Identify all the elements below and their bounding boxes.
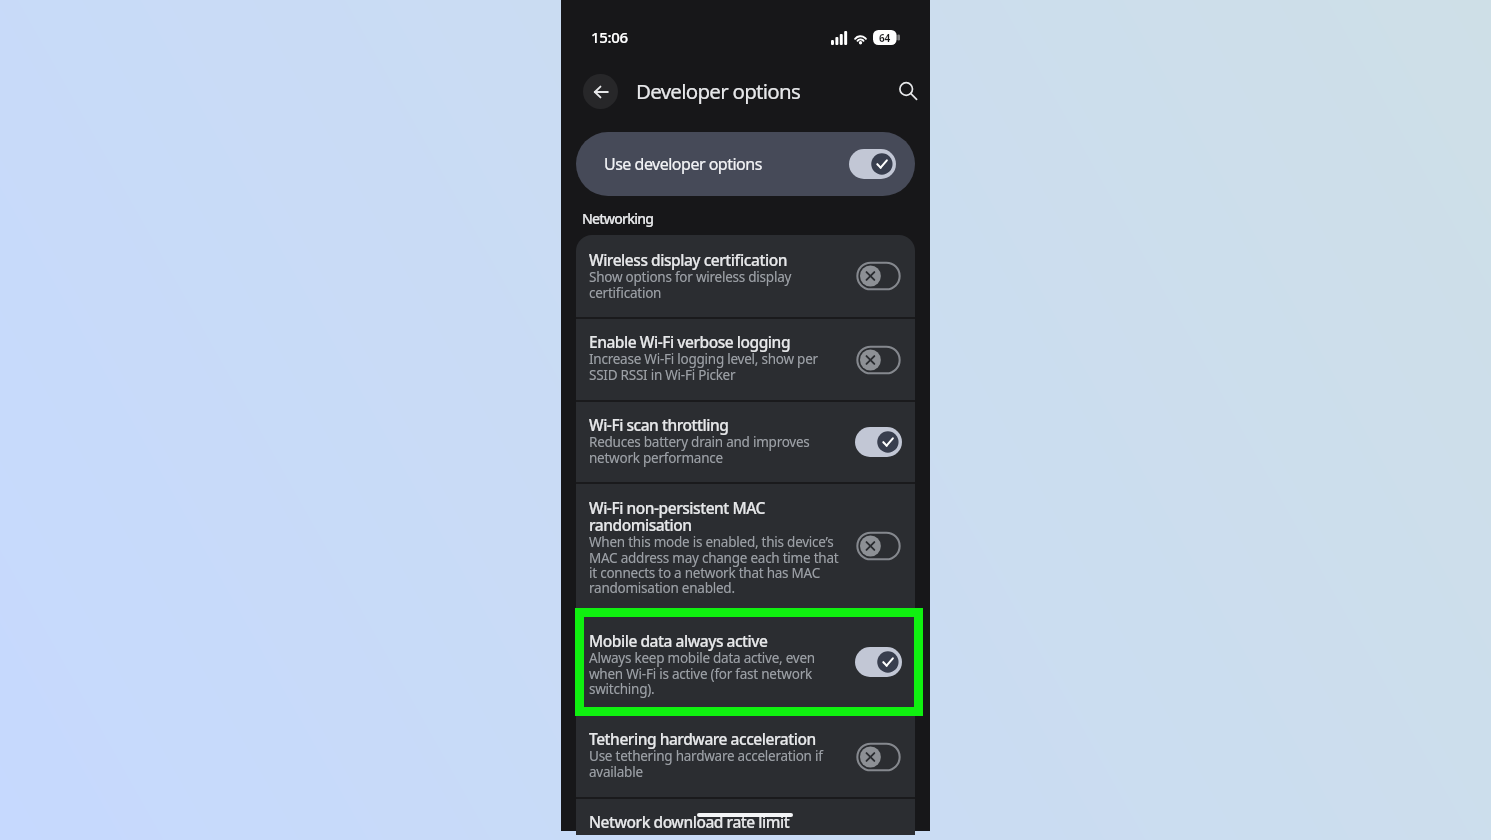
- staticText: Wi-Fi scan throttling: [589, 414, 729, 435]
- button[interactable]: Tethering hardware acceleration: [576, 716, 915, 797]
- button[interactable]: Network download rate limit: [576, 799, 915, 835]
- staticText: Show options for wireless display certif…: [589, 268, 792, 302]
- staticText: 15:06: [591, 27, 628, 47]
- staticText: Wi-Fi non-persistent MAC randomisation: [589, 497, 765, 535]
- button[interactable]: Toggle Mobile data always active: [855, 647, 902, 677]
- button[interactable]: Toggle Wi-Fi scan throttling: [855, 427, 902, 457]
- staticText: Use developer options: [604, 153, 762, 175]
- staticText: Networking: [582, 209, 654, 228]
- button[interactable]: Use developer options: [576, 132, 915, 196]
- button[interactable]: Back: [583, 74, 618, 109]
- staticText: Developer options: [636, 77, 801, 105]
- button[interactable]: Mobile data always active: [576, 608, 915, 716]
- staticText: When this mode is enabled, this device’s…: [589, 533, 839, 597]
- button[interactable]: Wi-Fi non-persistent MAC randomisation: [576, 484, 915, 608]
- button[interactable]: Enable Wi-Fi verbose logging: [576, 319, 915, 400]
- button[interactable]: Toggle Wi-Fi non-persistent MAC randomis…: [855, 531, 902, 561]
- staticText: Network download rate limit: [589, 811, 790, 832]
- staticText: 64: [879, 31, 890, 45]
- staticText: Mobile data always active: [589, 630, 768, 651]
- button[interactable]: Search: [891, 74, 925, 108]
- staticText: Wireless display certification: [589, 249, 787, 270]
- staticText: Always keep mobile data active, even whe…: [589, 649, 815, 698]
- staticText: Use tethering hardware acceleration if a…: [589, 747, 823, 781]
- button[interactable]: Toggle Wireless display certification: [855, 261, 902, 291]
- button[interactable]: Wireless display certification: [576, 235, 915, 317]
- staticText: Enable Wi-Fi verbose logging: [589, 331, 791, 352]
- staticText: Reduces battery drain and improves netwo…: [589, 433, 810, 467]
- button[interactable]: Toggle Enable Wi-Fi verbose logging: [855, 345, 902, 375]
- button[interactable]: Wi-Fi scan throttling: [576, 402, 915, 482]
- staticText: Tethering hardware acceleration: [589, 728, 816, 749]
- staticText: Increase Wi-Fi logging level, show per S…: [589, 350, 818, 384]
- button[interactable]: Toggle Tethering hardware acceleration: [855, 742, 902, 772]
